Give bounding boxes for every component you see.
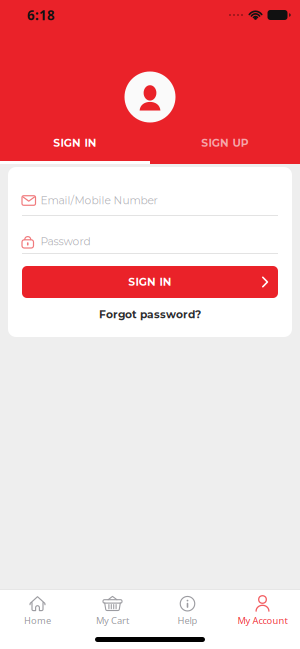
staticText: 6:18: [27, 6, 55, 24]
staticText: Password: [40, 235, 90, 248]
staticText: Help: [177, 614, 197, 627]
staticText: SIGN IN: [128, 275, 172, 288]
button[interactable]: Help: [150, 590, 225, 630]
staticText: Email/Mobile Number: [40, 194, 157, 207]
button[interactable]: Forgot password?: [22, 308, 278, 321]
staticText: Forgot password?: [99, 308, 201, 321]
staticText: Home: [24, 614, 51, 627]
button[interactable]: Home: [0, 590, 75, 630]
button[interactable]: My Account: [225, 590, 300, 630]
button[interactable]: SIGN IN: [0, 125, 150, 161]
button[interactable]: My Cart: [75, 590, 150, 630]
staticText: SIGN IN: [53, 136, 97, 149]
button[interactable]: SIGN IN: [22, 266, 278, 298]
staticText: My Cart: [96, 614, 129, 627]
button[interactable]: SIGN UP: [150, 125, 300, 161]
staticText: My Account: [237, 614, 287, 627]
staticText: SIGN UP: [201, 136, 249, 149]
